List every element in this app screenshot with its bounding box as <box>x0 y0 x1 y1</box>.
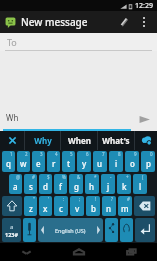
staticText: # <box>127 196 130 202</box>
staticText: b <box>91 203 96 214</box>
staticText: n <box>106 203 112 214</box>
staticText: ; <box>79 196 81 202</box>
staticText: What's <box>102 135 130 146</box>
staticText: : <box>63 196 65 202</box>
button[interactable]: Enter <box>135 218 155 242</box>
staticText: i <box>115 158 118 169</box>
button[interactable]: 7 <box>93 151 107 172</box>
button[interactable]: Share <box>105 218 118 242</box>
staticText: ! <box>95 196 97 202</box>
button[interactable]: Voice <box>23 218 36 242</box>
staticText: 1 <box>10 151 13 157</box>
staticText: 2 <box>25 151 28 157</box>
button[interactable]: More options <box>135 13 153 31</box>
staticText: w <box>20 158 27 169</box>
button[interactable]: + <box>117 174 131 194</box>
button[interactable]: % <box>54 174 67 194</box>
button[interactable]: Wh <box>3 107 131 131</box>
button[interactable]: ? <box>102 196 116 216</box>
button[interactable]: Shift <box>2 196 22 216</box>
staticText: f <box>59 181 62 192</box>
button[interactable]: & <box>69 174 83 194</box>
button[interactable]: Symbols <box>2 218 21 242</box>
staticText: + <box>126 174 129 180</box>
button[interactable]: 5 <box>62 151 75 172</box>
button[interactable]: ( <box>133 174 147 194</box>
staticText: 12:29 <box>135 1 153 11</box>
staticText: k <box>122 181 127 192</box>
staticText: ' <box>48 196 50 202</box>
staticText: # <box>32 174 35 180</box>
button[interactable]: 1 <box>2 151 15 172</box>
button[interactable]: ! <box>86 196 100 216</box>
staticText: t <box>67 158 71 169</box>
staticText: @ <box>16 174 21 180</box>
button[interactable]: 2 <box>17 151 30 172</box>
button[interactable]: # <box>24 174 37 194</box>
button[interactable]: " <box>24 196 37 216</box>
staticText: y <box>82 158 87 169</box>
staticText: ? <box>111 196 113 202</box>
button[interactable]: : <box>54 196 68 216</box>
button[interactable]: 6 <box>77 151 91 172</box>
staticText: 7 <box>102 151 105 157</box>
staticText: % <box>62 174 66 180</box>
button[interactable]: Close suggestions <box>0 131 24 150</box>
button[interactable]: @ <box>9 174 22 194</box>
staticText: m <box>121 203 129 214</box>
staticText: English (US) <box>55 227 86 234</box>
staticText: 6 <box>86 151 89 157</box>
button[interactable]: Home <box>53 243 105 261</box>
button[interactable]: When <box>61 131 97 150</box>
button[interactable]: 0 <box>141 151 155 172</box>
staticText: When <box>68 135 91 146</box>
button[interactable]: Voice input <box>135 131 157 150</box>
staticText: $ <box>47 174 50 180</box>
staticText: l <box>139 181 142 192</box>
button[interactable]: Attach <box>113 11 135 33</box>
staticText: a <box>10 223 14 231</box>
button[interactable]: Backspace <box>134 196 155 216</box>
button[interactable]: # <box>118 196 132 216</box>
button[interactable]: What's <box>98 131 134 150</box>
button[interactable]: - <box>101 174 115 194</box>
staticText: - <box>110 174 112 180</box>
button[interactable]: 9 <box>125 151 139 172</box>
button[interactable]: 4 <box>47 151 60 172</box>
button[interactable]: 8 <box>109 151 123 172</box>
staticText: g <box>74 181 79 192</box>
button[interactable]: Why <box>25 131 60 150</box>
staticText: e <box>36 158 41 169</box>
staticText: o <box>130 158 135 169</box>
staticText: To <box>7 36 17 48</box>
staticText: & <box>77 174 81 180</box>
staticText: q <box>6 158 11 169</box>
button[interactable]: * <box>85 174 99 194</box>
staticText: r <box>52 158 56 169</box>
staticText: a <box>13 181 18 192</box>
staticText: 3 <box>40 151 43 157</box>
button[interactable]: To <box>0 33 157 51</box>
staticText: u <box>97 158 103 169</box>
staticText: 0 <box>150 151 153 157</box>
staticText: x <box>43 203 48 214</box>
button[interactable]: Send <box>131 107 157 131</box>
button[interactable]: $ <box>39 174 52 194</box>
button[interactable]: Recent apps <box>105 243 157 261</box>
button[interactable]: Undo <box>120 218 133 242</box>
staticText: p <box>146 158 151 169</box>
staticText: New message <box>21 15 88 29</box>
staticText: ( <box>142 174 144 180</box>
button[interactable]: 3 <box>32 151 45 172</box>
staticText: h <box>89 181 95 192</box>
staticText: z <box>29 203 33 214</box>
staticText: c <box>59 203 63 214</box>
button[interactable]: Back <box>0 243 53 261</box>
staticText: 8 <box>118 151 121 157</box>
button[interactable]: ' <box>39 196 52 216</box>
button[interactable]: ; <box>70 196 84 216</box>
staticText: Wh <box>6 112 19 123</box>
button[interactable]: Space <box>38 218 103 242</box>
staticText: s <box>29 181 33 192</box>
staticText: 4 <box>55 151 58 157</box>
